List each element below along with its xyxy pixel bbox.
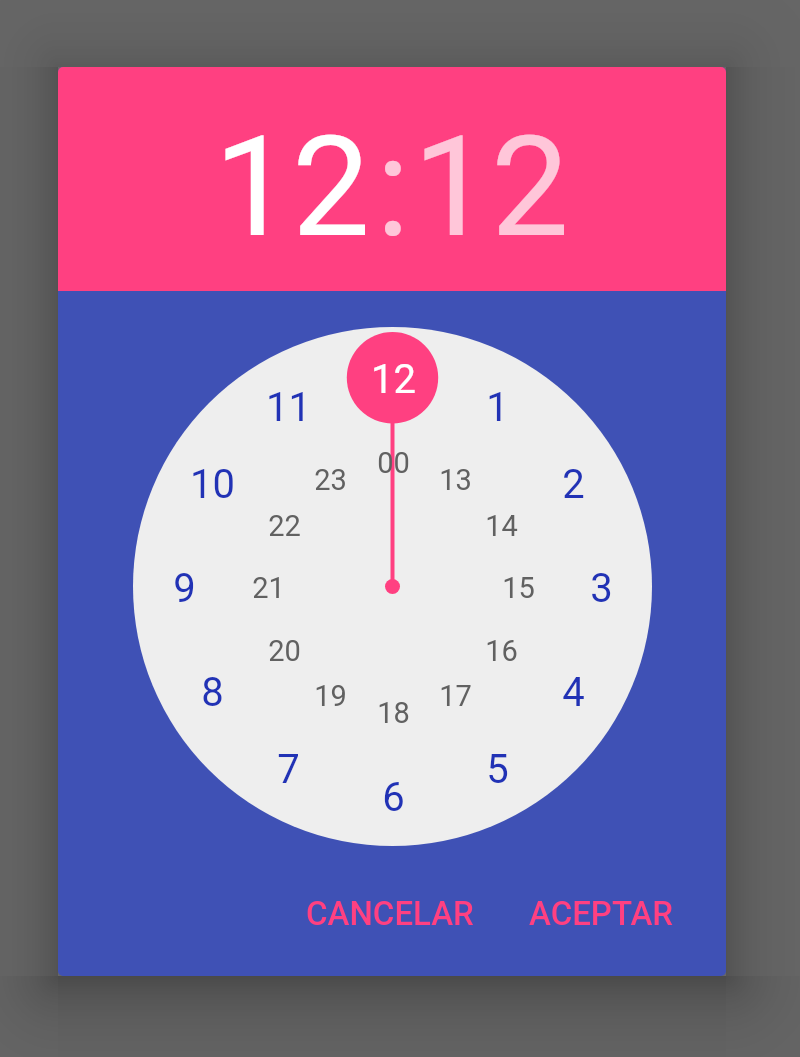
staticText: 21 bbox=[252, 571, 285, 605]
staticText: 15 bbox=[502, 571, 535, 605]
button[interactable]: 7 bbox=[248, 739, 328, 799]
staticText: 12 bbox=[371, 356, 416, 403]
staticText: 3 bbox=[590, 565, 613, 612]
button[interactable]: 12 bbox=[214, 106, 371, 269]
staticText: : bbox=[376, 106, 410, 269]
staticText: 14 bbox=[485, 509, 518, 543]
staticText: 16 bbox=[485, 634, 518, 668]
button[interactable]: 10 bbox=[172, 454, 252, 514]
button[interactable]: 22 bbox=[251, 496, 317, 556]
button[interactable]: 14 bbox=[468, 496, 534, 556]
button[interactable]: 16 bbox=[468, 621, 534, 681]
button[interactable]: 12 bbox=[413, 106, 570, 269]
button[interactable]: ACEPTAR bbox=[521, 885, 682, 942]
button[interactable]: 18 bbox=[360, 683, 426, 743]
button[interactable]: 12 bbox=[353, 349, 433, 409]
button[interactable]: 19 bbox=[297, 666, 363, 726]
button[interactable]: 6 bbox=[353, 767, 433, 827]
button[interactable]: 11 bbox=[248, 377, 328, 437]
button[interactable]: 23 bbox=[297, 450, 363, 510]
staticText: 10 bbox=[190, 461, 235, 508]
button[interactable]: 9 bbox=[144, 558, 224, 618]
staticText: 22 bbox=[268, 509, 301, 543]
staticText: 5 bbox=[486, 746, 509, 793]
button[interactable]: 15 bbox=[485, 558, 551, 618]
button[interactable]: CANCELAR bbox=[298, 885, 482, 942]
button[interactable]: 1 bbox=[457, 377, 537, 437]
staticText: ACEPTAR bbox=[529, 894, 674, 933]
button[interactable]: 3 bbox=[561, 558, 641, 618]
staticText: 2 bbox=[562, 461, 585, 508]
button[interactable]: 21 bbox=[235, 558, 301, 618]
button[interactable]: 4 bbox=[533, 662, 613, 722]
staticText: 00 bbox=[377, 446, 410, 480]
staticText: 4 bbox=[562, 669, 585, 716]
staticText: CANCELAR bbox=[306, 894, 474, 933]
staticText: 1 bbox=[486, 384, 509, 431]
staticText: 13 bbox=[439, 463, 472, 497]
staticText: 23 bbox=[314, 463, 347, 497]
staticText: 11 bbox=[266, 384, 311, 431]
button[interactable]: 5 bbox=[457, 739, 537, 799]
staticText: 20 bbox=[268, 634, 301, 668]
staticText: 9 bbox=[173, 565, 196, 612]
button[interactable]: 2 bbox=[533, 454, 613, 514]
button[interactable]: 20 bbox=[251, 621, 317, 681]
staticText: 6 bbox=[382, 774, 405, 821]
staticText: 18 bbox=[377, 696, 410, 730]
button[interactable]: 8 bbox=[172, 662, 252, 722]
button[interactable]: 00 bbox=[360, 433, 426, 493]
staticText: 17 bbox=[439, 679, 472, 713]
button[interactable]: 17 bbox=[422, 666, 488, 726]
staticText: 19 bbox=[314, 679, 347, 713]
staticText: 8 bbox=[201, 669, 224, 716]
staticText: 7 bbox=[277, 746, 300, 793]
button[interactable]: 13 bbox=[422, 450, 488, 510]
